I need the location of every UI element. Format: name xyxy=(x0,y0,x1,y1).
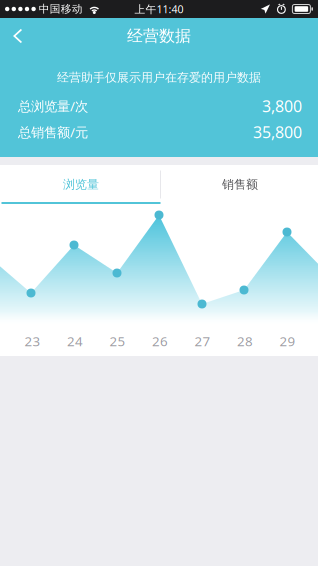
staticText: 25 xyxy=(109,332,125,350)
staticText: 中国移动 xyxy=(39,2,83,15)
staticText: 总浏览量/次 xyxy=(18,97,88,115)
staticText: 27 xyxy=(194,332,210,350)
staticText: 24 xyxy=(67,332,83,350)
staticText: 总销售额/元 xyxy=(18,123,88,141)
staticText: 销售额 xyxy=(222,177,258,192)
staticText: 28 xyxy=(237,332,253,350)
staticText: 上午11:40 xyxy=(134,2,183,16)
button[interactable]: Back xyxy=(0,18,36,54)
staticText: 35,800 xyxy=(253,121,302,143)
staticText: 26 xyxy=(152,332,168,350)
button[interactable]: 浏览量 xyxy=(1,165,160,204)
staticText: 29 xyxy=(279,332,295,350)
staticText: 23 xyxy=(24,332,40,350)
staticText: 浏览量 xyxy=(63,177,99,192)
staticText: 经营助手仅展示用户在存爱的用户数据 xyxy=(57,70,261,85)
staticText: 3,800 xyxy=(262,95,302,117)
button[interactable]: 销售额 xyxy=(160,165,318,204)
staticText: 经营数据 xyxy=(127,26,191,46)
